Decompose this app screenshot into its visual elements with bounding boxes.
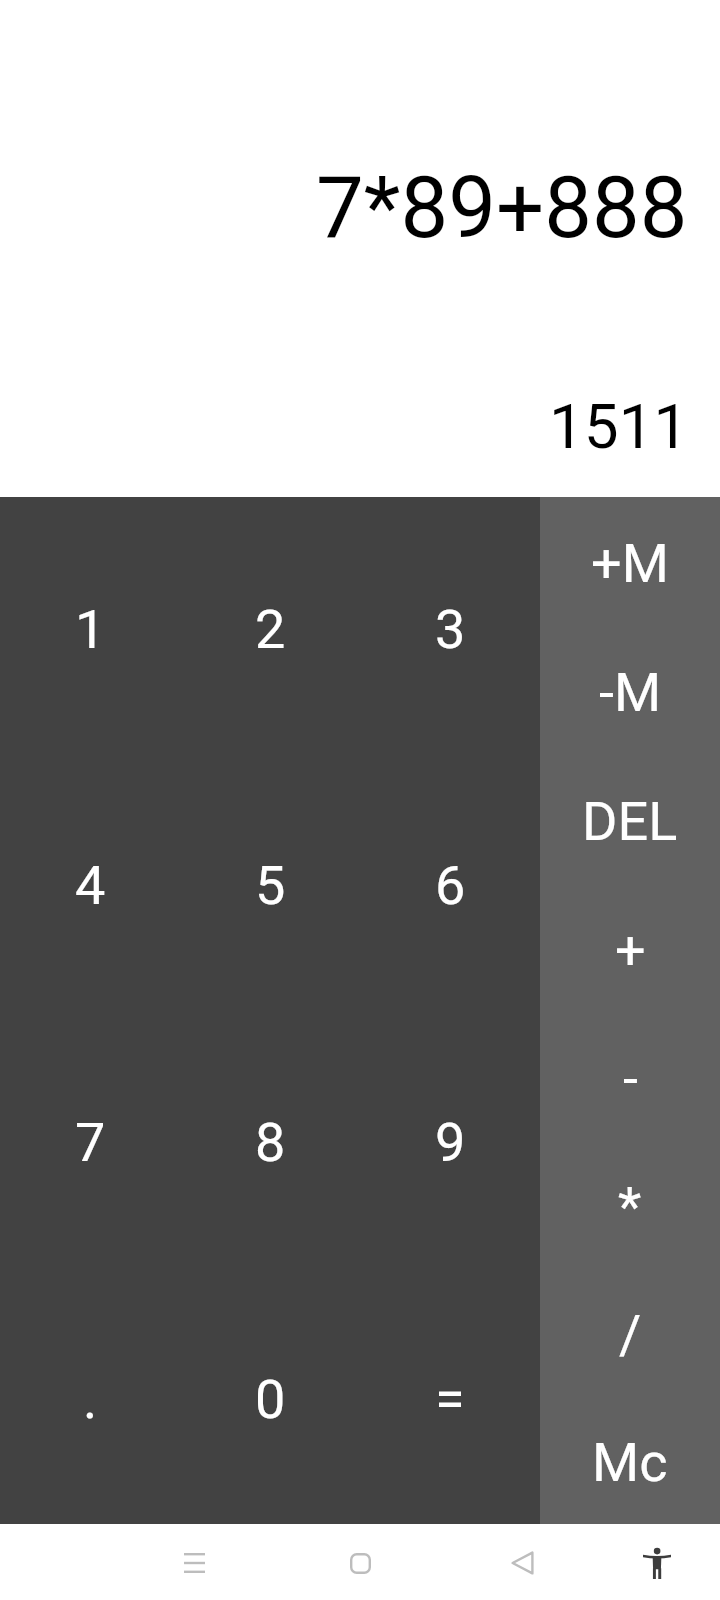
button[interactable]: *: [540, 1140, 720, 1268]
button[interactable]: =: [360, 1267, 540, 1524]
staticText: 1: [75, 598, 106, 661]
staticText: *: [618, 1175, 642, 1238]
staticText: -: [623, 1047, 638, 1110]
button[interactable]: DEL: [540, 755, 720, 884]
button[interactable]: 4: [0, 753, 180, 1010]
button[interactable]: .: [0, 1267, 180, 1524]
staticText: +: [615, 919, 646, 982]
button[interactable]: -: [540, 1012, 720, 1140]
staticText: DEL: [582, 790, 678, 853]
button[interactable]: Back: [484, 1525, 560, 1600]
staticText: 6: [435, 854, 466, 917]
button[interactable]: 0: [180, 1267, 360, 1524]
staticText: Mc: [592, 1431, 668, 1494]
button[interactable]: Accessibility: [619, 1525, 695, 1600]
staticText: 9: [435, 1111, 466, 1174]
staticText: 1511: [549, 390, 689, 463]
button[interactable]: 6: [360, 753, 540, 1010]
staticText: =: [435, 1368, 465, 1431]
button[interactable]: 3: [360, 497, 540, 753]
staticText: 2: [255, 598, 286, 661]
staticText: 7: [75, 1111, 106, 1174]
button[interactable]: Home: [322, 1525, 398, 1600]
staticText: -M: [599, 661, 662, 724]
button[interactable]: 5: [180, 753, 360, 1010]
button[interactable]: +: [540, 884, 720, 1012]
button[interactable]: /: [540, 1268, 720, 1396]
staticText: 7*89+888: [316, 158, 688, 258]
staticText: 4: [75, 854, 106, 917]
staticText: 3: [435, 598, 466, 661]
button[interactable]: 2: [180, 497, 360, 753]
staticText: 5: [255, 854, 286, 917]
button[interactable]: Mc: [540, 1396, 720, 1524]
button[interactable]: +M: [540, 497, 720, 626]
button[interactable]: 8: [180, 1010, 360, 1267]
button[interactable]: Recent apps: [156, 1525, 232, 1600]
button[interactable]: 1: [0, 497, 180, 753]
button[interactable]: 9: [360, 1010, 540, 1267]
staticText: /: [619, 1303, 642, 1366]
staticText: .: [83, 1368, 98, 1431]
staticText: 0: [255, 1368, 286, 1431]
button[interactable]: -M: [540, 626, 720, 755]
staticText: 8: [255, 1111, 286, 1174]
staticText: +M: [591, 532, 669, 595]
button[interactable]: 7: [0, 1010, 180, 1267]
